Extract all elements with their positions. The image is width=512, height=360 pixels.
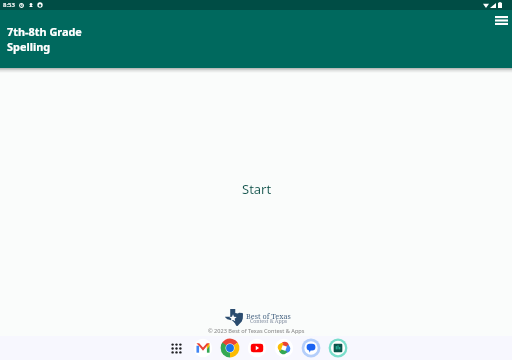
button[interactable]: YouTube	[247, 338, 267, 358]
button[interactable]: Messages	[301, 338, 321, 358]
button[interactable]: Start	[234, 176, 280, 202]
staticText: Start	[242, 180, 272, 198]
staticText: Contest & Apps	[250, 317, 288, 324]
staticText: © 2023 Best of Texas Contest & Apps	[208, 327, 305, 335]
button[interactable]: Spelling app	[328, 338, 348, 358]
staticText: 8:53	[3, 1, 15, 9]
staticText: Spelling	[7, 39, 51, 54]
button[interactable]: Open navigation menu	[489, 9, 512, 32]
button[interactable]: Photos	[274, 338, 294, 358]
button[interactable]: Gmail	[193, 338, 213, 358]
staticText: 7th-8th Grade	[7, 24, 82, 39]
button[interactable]: Chrome	[220, 338, 240, 358]
staticText: Best of Texas	[246, 311, 291, 321]
button[interactable]: All apps	[166, 338, 186, 358]
